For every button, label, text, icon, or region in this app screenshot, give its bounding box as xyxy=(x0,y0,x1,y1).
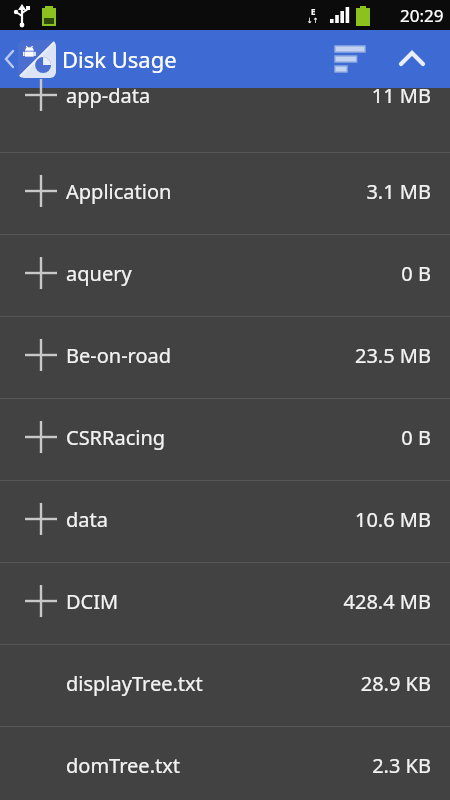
staticText: Application xyxy=(66,178,172,205)
staticText: domTree.txt xyxy=(66,752,181,779)
staticText: Disk Usage xyxy=(62,44,177,74)
staticText: 2.3 KB xyxy=(372,752,431,779)
staticText: CSRRacing xyxy=(66,424,166,451)
staticText: app-data xyxy=(66,82,151,109)
staticText: 20:29 xyxy=(400,4,444,27)
staticText: DCIM xyxy=(66,588,119,615)
button[interactable]: data xyxy=(0,481,450,562)
button[interactable]: DCIM xyxy=(0,563,450,644)
staticText: E xyxy=(311,6,316,17)
staticText: displayTree.txt xyxy=(66,670,203,697)
button[interactable]: Collapse xyxy=(388,35,436,83)
staticText: 3.1 MB xyxy=(366,178,431,205)
button[interactable]: Sort xyxy=(326,35,374,83)
staticText: ↓↑ xyxy=(307,17,319,25)
staticText: 28.9 KB xyxy=(360,670,431,697)
staticText: 11 MB xyxy=(371,82,431,109)
button[interactable]: Navigate up xyxy=(0,30,60,88)
button[interactable]: CSRRacing xyxy=(0,399,450,480)
staticText: 0 B xyxy=(401,424,431,451)
button[interactable]: Application xyxy=(0,153,450,234)
button[interactable]: Be-on-road xyxy=(0,317,450,398)
button[interactable]: domTree.txt xyxy=(0,727,450,800)
staticText: 428.4 MB xyxy=(343,588,431,615)
staticText: Be-on-road xyxy=(66,342,172,369)
button[interactable]: displayTree.txt xyxy=(0,645,450,726)
staticText: aquery xyxy=(66,260,132,287)
staticText: data xyxy=(66,506,108,533)
staticText: 0 B xyxy=(401,260,431,287)
button[interactable]: aquery xyxy=(0,235,450,316)
staticText: 23.5 MB xyxy=(354,342,431,369)
staticText: 10.6 MB xyxy=(354,506,431,533)
button[interactable]: app-data xyxy=(0,88,450,152)
